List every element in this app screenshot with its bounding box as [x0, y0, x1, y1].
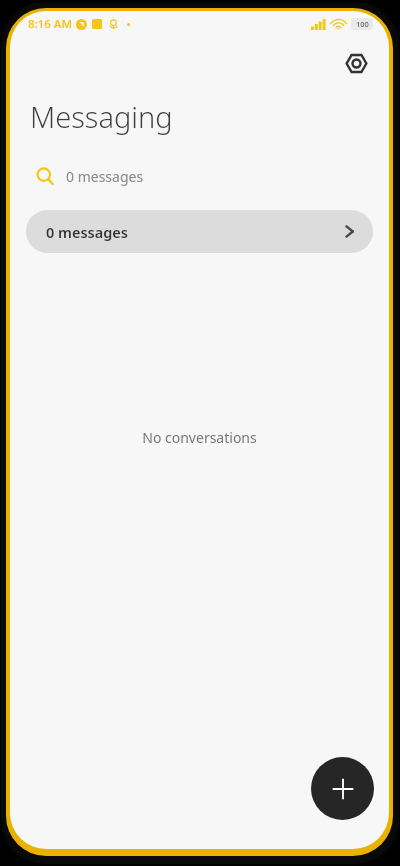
staticText: 0 messages [46, 222, 128, 242]
staticText: Messaging [30, 97, 173, 136]
staticText: 0 messages [66, 167, 144, 186]
staticText: 100 [356, 19, 369, 29]
staticText: No conversations [10, 428, 389, 447]
button[interactable]: Settings [335, 42, 377, 84]
button[interactable]: Start new conversation [311, 757, 374, 820]
staticText: 8:16 AM [28, 16, 72, 32]
button[interactable]: 0 messages [26, 161, 373, 192]
button[interactable]: 0 messages [26, 210, 373, 253]
